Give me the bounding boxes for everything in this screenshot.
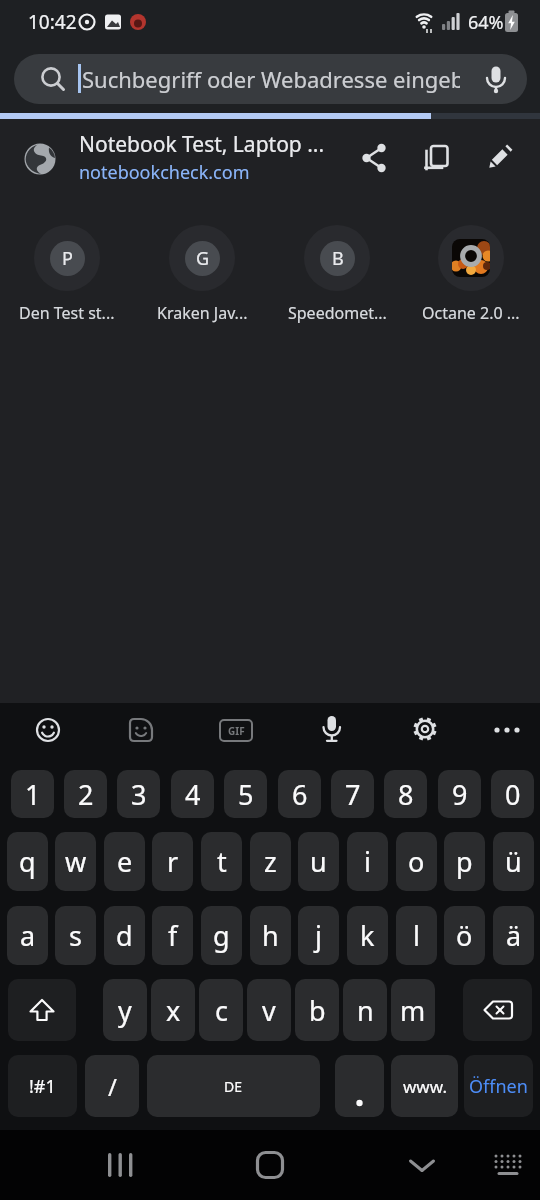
button[interactable]: n <box>343 979 387 1041</box>
button[interactable]: x <box>151 979 195 1041</box>
button[interactable]: g <box>201 906 242 965</box>
button[interactable]: w <box>55 832 96 891</box>
staticText: 9 <box>452 776 468 813</box>
staticText: ö <box>456 917 473 954</box>
staticText: r <box>167 843 179 880</box>
button[interactable]: 9 <box>438 770 481 818</box>
button[interactable]: l <box>396 906 437 965</box>
button[interactable]: h <box>250 906 291 965</box>
staticText: GIF <box>228 724 245 738</box>
button[interactable]: o <box>396 832 437 891</box>
button[interactable]: G <box>142 217 262 327</box>
button[interactable]: 6 <box>278 770 321 818</box>
staticText: www. <box>403 1075 447 1098</box>
button[interactable]: f <box>152 906 193 965</box>
button[interactable] <box>0 1130 540 1200</box>
button[interactable]: Öffnen <box>464 1055 533 1117</box>
button[interactable]: Suchbegriff oder Webadresse eingeben <box>14 54 527 104</box>
button[interactable] <box>490 1148 526 1182</box>
button[interactable]: !#1 <box>8 1055 77 1117</box>
button[interactable]: t <box>201 832 242 891</box>
button[interactable]: ü <box>493 832 534 891</box>
staticText: s <box>69 917 82 954</box>
staticText: p <box>456 843 473 880</box>
button[interactable]: GIF <box>219 719 253 742</box>
staticText: f <box>168 917 178 954</box>
button[interactable] <box>335 1055 384 1117</box>
button[interactable]: e <box>104 832 145 891</box>
staticText: n <box>357 992 374 1029</box>
button[interactable]: p <box>444 832 485 891</box>
button[interactable]: i <box>347 832 388 891</box>
staticText: Öffnen <box>469 1074 528 1099</box>
staticText: a <box>20 917 36 954</box>
button[interactable]: B <box>277 217 397 327</box>
staticText: DE <box>224 1077 243 1096</box>
staticText: 10:42 <box>28 9 77 35</box>
button[interactable]: Notebook Test, Laptop ... <box>0 119 540 196</box>
button[interactable] <box>30 712 66 748</box>
button[interactable]: d <box>104 906 145 965</box>
button[interactable] <box>402 1146 442 1184</box>
button[interactable] <box>408 712 442 746</box>
button[interactable] <box>484 141 518 175</box>
button[interactable]: 4 <box>171 770 214 818</box>
staticText: ü <box>505 843 522 880</box>
button[interactable]: DE <box>147 1055 320 1117</box>
button[interactable] <box>357 141 391 175</box>
button[interactable]: q <box>7 832 48 891</box>
button[interactable] <box>123 712 159 748</box>
button[interactable] <box>8 979 76 1041</box>
button[interactable]: Octane 2.0 ... <box>411 217 531 327</box>
button[interactable]: s <box>55 906 96 965</box>
staticText: m <box>400 992 426 1029</box>
staticText: l <box>413 917 420 954</box>
button[interactable]: k <box>347 906 388 965</box>
staticText: z <box>264 843 277 880</box>
button[interactable]: 2 <box>64 770 107 818</box>
button[interactable]: a <box>7 906 48 965</box>
button[interactable]: u <box>298 832 339 891</box>
button[interactable]: ö <box>444 906 485 965</box>
button[interactable]: 3 <box>117 770 160 818</box>
button[interactable]: P <box>7 217 127 327</box>
button[interactable] <box>315 712 349 746</box>
button[interactable]: 0 <box>491 770 534 818</box>
staticText: 5 <box>238 776 254 813</box>
button[interactable]: 5 <box>224 770 267 818</box>
staticText: Notebook Test, Laptop ... <box>79 130 325 159</box>
staticText: u <box>310 843 327 880</box>
button[interactable]: v <box>247 979 291 1041</box>
button[interactable]: j <box>298 906 339 965</box>
staticText: G <box>196 246 210 271</box>
staticText: i <box>364 843 371 880</box>
staticText: e <box>117 843 133 880</box>
staticText: 8 <box>398 776 414 813</box>
button[interactable]: m <box>391 979 435 1041</box>
button[interactable]: 8 <box>384 770 427 818</box>
button[interactable] <box>250 1146 290 1184</box>
staticText: Octane 2.0 ... <box>422 302 520 324</box>
button[interactable]: www. <box>391 1055 458 1117</box>
button[interactable] <box>100 1146 140 1184</box>
button[interactable] <box>492 722 524 738</box>
staticText: y <box>118 992 132 1029</box>
button[interactable]: 1 <box>11 770 54 818</box>
staticText: / <box>108 1070 117 1103</box>
staticText: x <box>166 992 181 1029</box>
button[interactable]: / <box>85 1055 139 1117</box>
button[interactable]: r <box>152 832 193 891</box>
button[interactable] <box>463 979 532 1041</box>
staticText: ä <box>506 917 522 954</box>
button[interactable]: ä <box>493 906 534 965</box>
button[interactable]: y <box>103 979 147 1041</box>
staticText: d <box>116 917 133 954</box>
button[interactable]: z <box>250 832 291 891</box>
staticText: 64% <box>468 10 504 35</box>
button[interactable]: c <box>199 979 243 1041</box>
button[interactable]: 7 <box>331 770 374 818</box>
staticText: Den Test st... <box>19 302 115 324</box>
staticText: notebookcheck.com <box>79 160 250 185</box>
button[interactable]: b <box>295 979 339 1041</box>
button[interactable] <box>420 141 454 175</box>
